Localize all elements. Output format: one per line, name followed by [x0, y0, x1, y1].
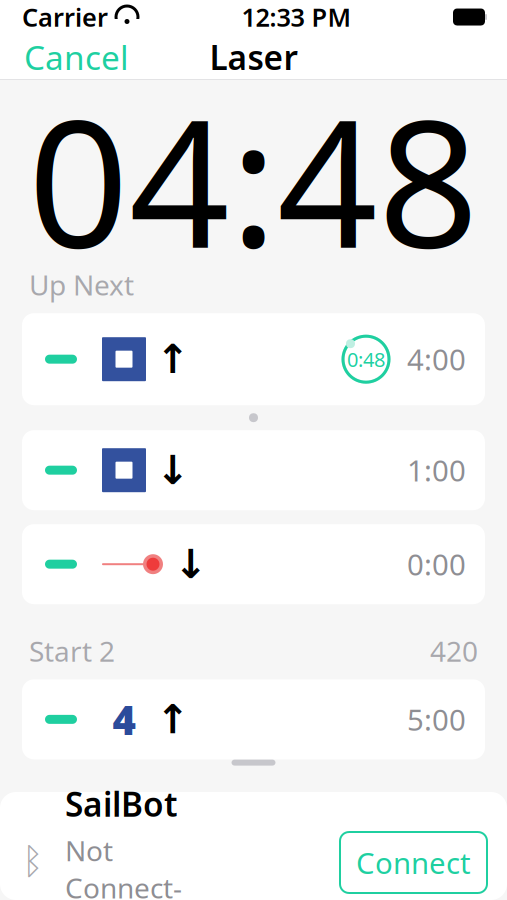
staticText: ↑: [156, 697, 190, 742]
staticText: 1:00: [407, 451, 466, 490]
staticText: 04:48: [28, 62, 479, 296]
button[interactable]: ↓: [22, 524, 485, 604]
staticText: ↓: [174, 541, 208, 587]
staticText: Connect: [356, 843, 471, 882]
button[interactable]: ↑: [22, 313, 485, 405]
staticText: 0:48: [347, 346, 385, 372]
button[interactable]: Cancel: [0, 27, 129, 87]
button[interactable]: 4: [22, 679, 485, 759]
staticText: 5:00: [407, 700, 466, 739]
staticText: ↓: [156, 447, 190, 493]
staticText: Not Connected: [65, 832, 182, 900]
staticText: 4: [112, 693, 135, 746]
staticText: 0:00: [407, 545, 466, 584]
button[interactable]: Connect: [340, 832, 487, 893]
staticText: SailBot: [65, 782, 178, 826]
staticText: Up Next: [29, 266, 134, 303]
staticText: 420: [430, 632, 478, 669]
staticText: ↑: [156, 336, 190, 382]
staticText: 12:33 PM: [241, 0, 351, 34]
staticText: ᛒ: [22, 845, 44, 880]
staticText: Cancel: [24, 35, 129, 79]
staticText: Start 2: [29, 632, 115, 669]
staticText: 4:00: [407, 340, 466, 379]
staticText: Carrier: [22, 0, 108, 34]
button[interactable]: ↓: [22, 430, 485, 510]
staticText: Laser: [209, 35, 297, 79]
